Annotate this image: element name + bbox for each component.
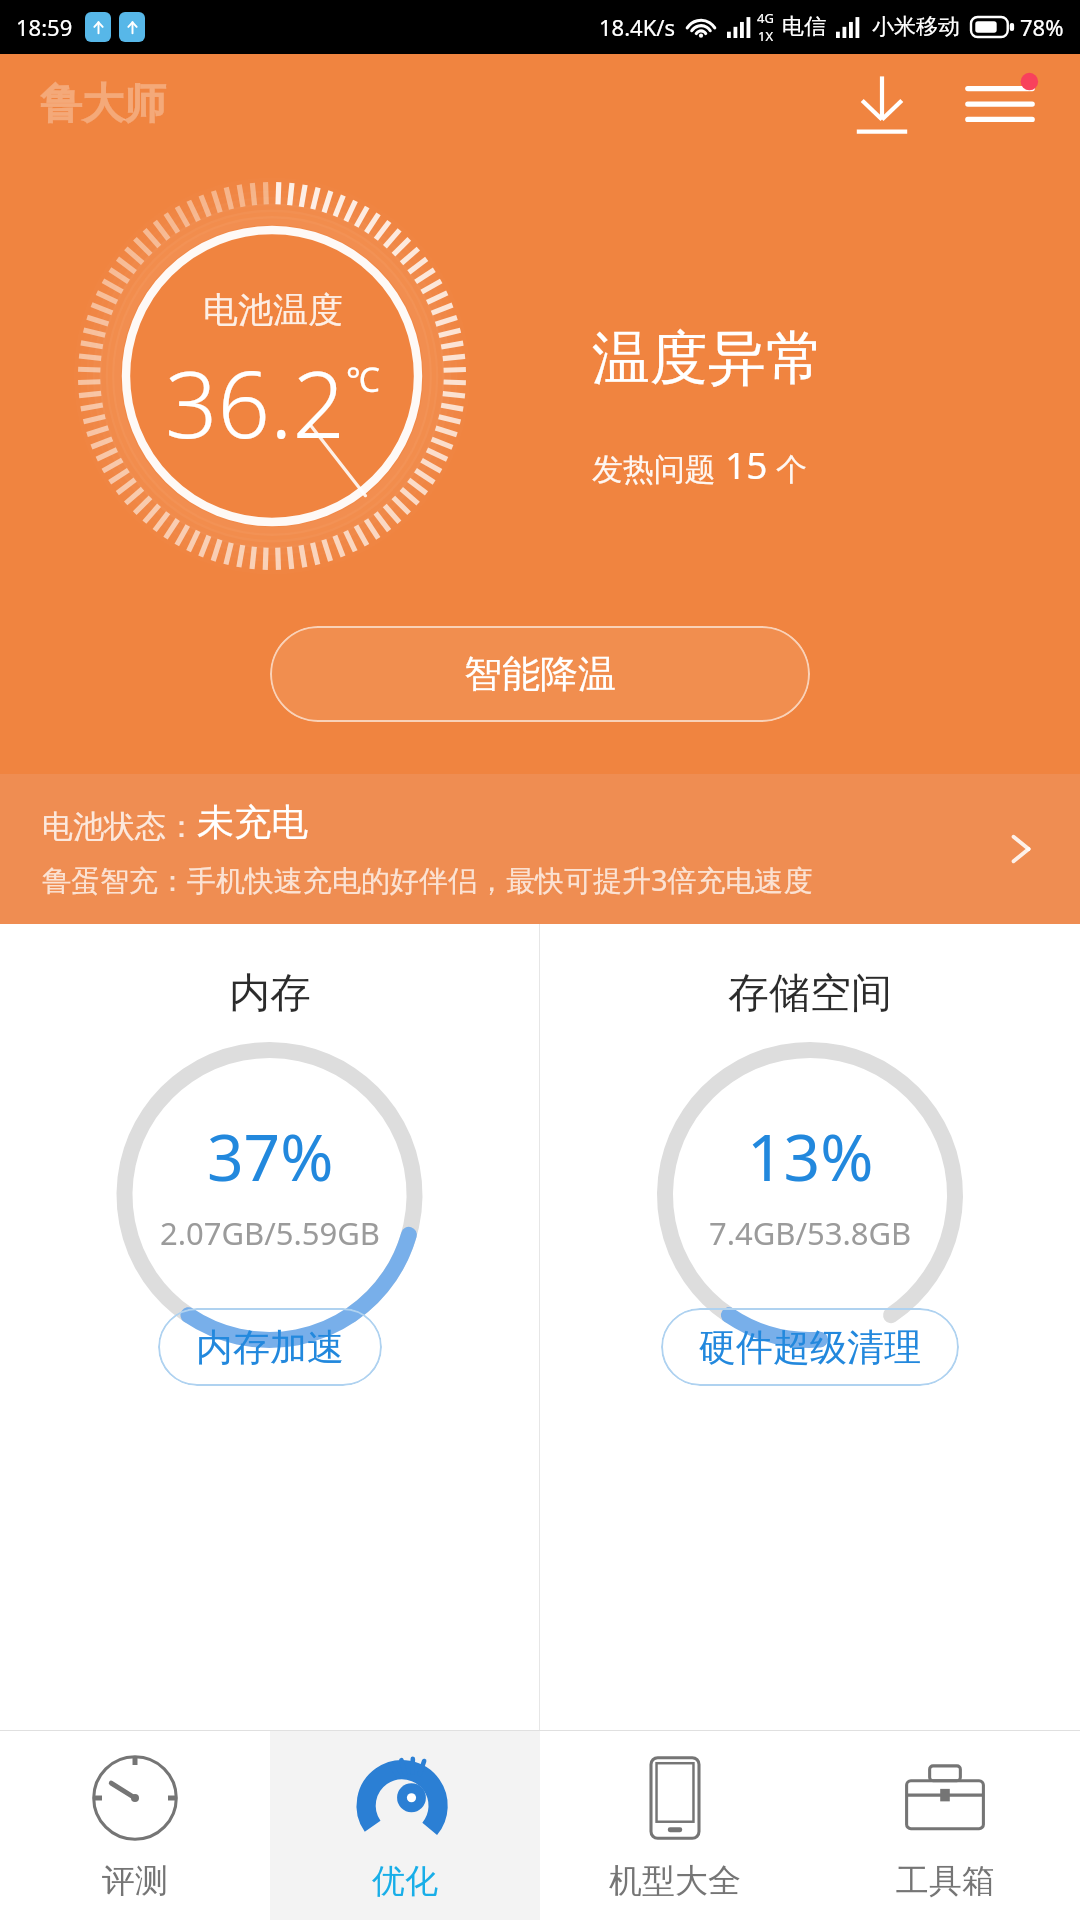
staticText: 内存加速 — [196, 1324, 344, 1371]
staticText: 15 — [725, 439, 768, 489]
staticText: 硬件超级清理 — [699, 1324, 921, 1371]
button[interactable]: 硬件超级清理 — [661, 1308, 959, 1386]
staticText: 7.4GB/53.8GB — [709, 1212, 912, 1254]
staticText: 评测 — [102, 1860, 168, 1902]
button[interactable]: 评测 — [0, 1731, 270, 1920]
staticText: ℃ — [346, 356, 380, 402]
staticText: 18:59 — [16, 12, 73, 42]
staticText: 电池温度 — [203, 288, 343, 332]
staticText: 个 — [768, 447, 808, 489]
button[interactable]: Menu — [956, 60, 1044, 148]
button[interactable]: 电池状态： — [0, 774, 1080, 924]
staticText: 优化 — [372, 1860, 438, 1902]
staticText: 电信 — [782, 13, 826, 41]
staticText: 工具箱 — [896, 1860, 995, 1902]
staticText: 温度异常 — [592, 322, 824, 395]
button[interactable]: Download — [844, 66, 920, 142]
staticText: 36.2 — [165, 340, 346, 465]
staticText: 13% — [747, 1113, 874, 1200]
button[interactable]: 机型大全 — [540, 1731, 810, 1920]
button[interactable]: 存储空间 — [540, 924, 1080, 1730]
staticText: 18.4K/s — [599, 12, 675, 42]
button[interactable]: 优化 — [270, 1731, 540, 1920]
staticText: 未充电 — [197, 799, 308, 846]
staticText: 发热问题 — [592, 447, 725, 489]
staticText: 2.07GB/5.59GB — [160, 1212, 380, 1254]
staticText: 电池状态： — [42, 807, 197, 846]
staticText: 智能降温 — [464, 650, 616, 698]
staticText: 小米移动 — [872, 13, 960, 41]
staticText: 鲁大师 — [40, 78, 166, 131]
staticText: 78% — [1020, 12, 1064, 42]
button[interactable]: 内存加速 — [158, 1308, 382, 1386]
button[interactable]: 智能降温 — [270, 626, 810, 722]
staticText: 内存 — [229, 968, 311, 1020]
staticText: 1X — [758, 27, 774, 45]
staticText: 存储空间 — [728, 968, 892, 1020]
staticText: 4G — [757, 9, 774, 27]
staticText: 机型大全 — [609, 1860, 741, 1902]
button[interactable]: 工具箱 — [810, 1731, 1080, 1920]
staticText: 鲁蛋智充：手机快速充电的好伴侣，最快可提升3倍充电速度 — [42, 860, 813, 900]
staticText: 37% — [207, 1113, 334, 1200]
button[interactable]: 内存 — [0, 924, 539, 1730]
